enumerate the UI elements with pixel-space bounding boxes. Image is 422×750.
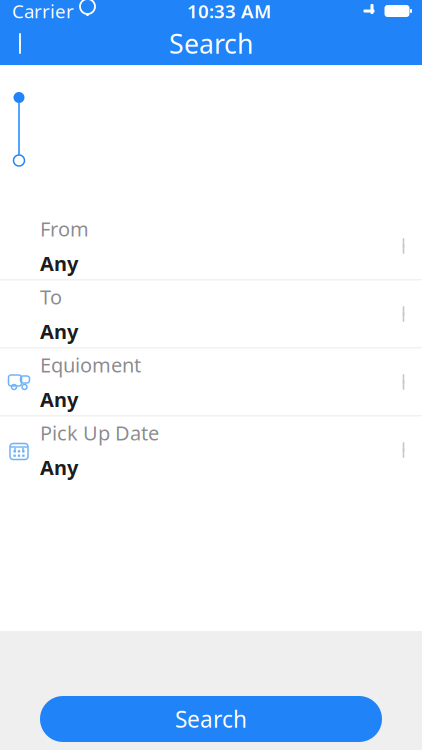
staticText: Pick Up Date (40, 419, 159, 446)
staticText: Any (40, 250, 78, 277)
staticText: 10:33 AM (187, 0, 271, 23)
button[interactable]: Search (40, 696, 382, 742)
button[interactable]: Pick Up Date (0, 416, 422, 483)
staticText: From (40, 215, 89, 242)
staticText: Search (169, 26, 253, 61)
staticText: Equioment (40, 351, 141, 378)
staticText: Any (40, 454, 78, 481)
staticText: To (40, 283, 62, 310)
staticText: Any (40, 318, 78, 345)
button[interactable]: From (0, 212, 422, 279)
button[interactable]: Back (0, 21, 44, 65)
button[interactable]: To (0, 280, 422, 347)
staticText: Any (40, 386, 78, 413)
staticText: Carrier (12, 0, 74, 23)
button[interactable]: Equioment (0, 348, 422, 415)
staticText: Search (175, 704, 247, 734)
